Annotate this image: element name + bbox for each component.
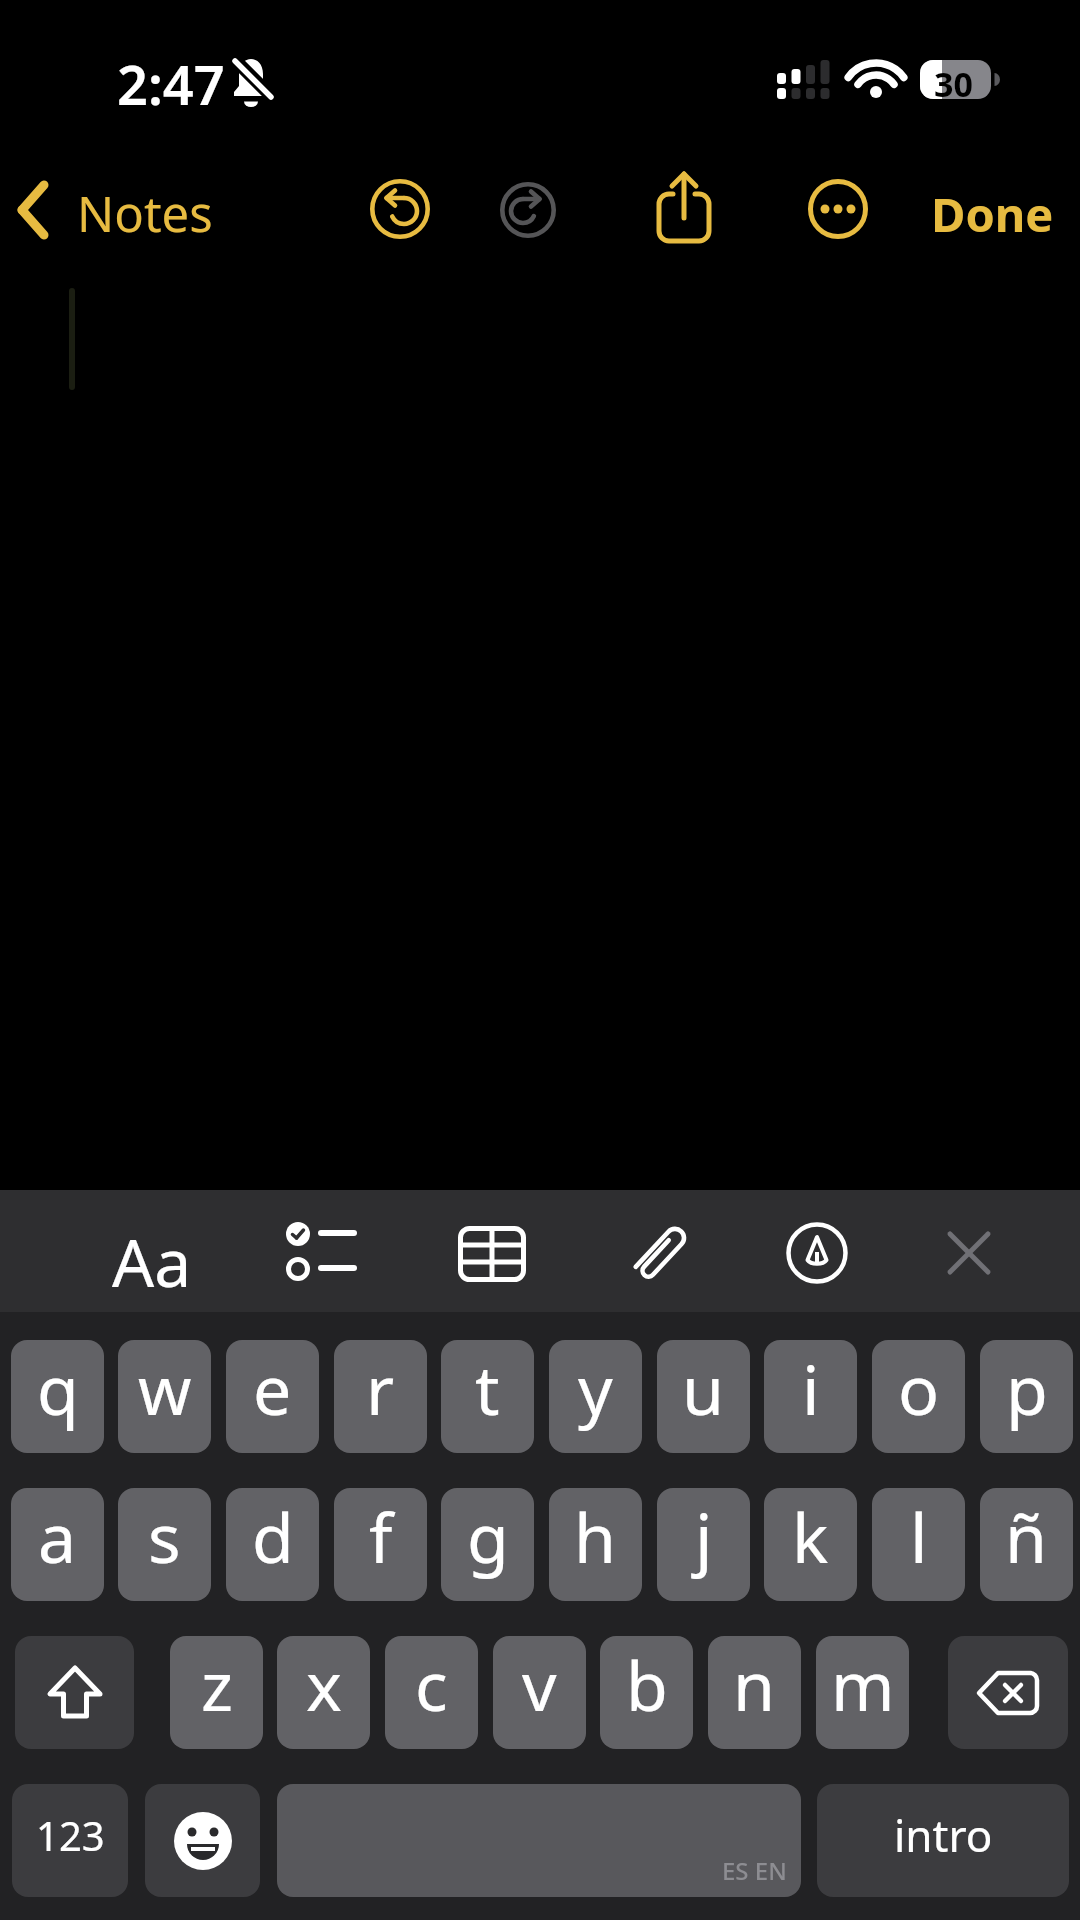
button[interactable] <box>652 168 716 248</box>
staticText: t <box>475 1342 500 1435</box>
staticText: h <box>574 1490 617 1583</box>
button[interactable]: p <box>980 1340 1073 1453</box>
button[interactable]: u <box>657 1340 750 1453</box>
button[interactable]: i <box>764 1340 857 1453</box>
staticText: y <box>578 1342 613 1435</box>
staticText: a <box>38 1490 77 1583</box>
staticText: 2:47 <box>117 47 225 121</box>
staticText: l <box>910 1490 928 1583</box>
staticText: k <box>792 1490 829 1583</box>
staticText: z <box>201 1638 233 1731</box>
button[interactable]: Aa <box>112 1216 192 1306</box>
button[interactable]: k <box>764 1488 857 1601</box>
button[interactable]: 123 <box>12 1784 128 1897</box>
button[interactable]: g <box>441 1488 534 1601</box>
button[interactable]: d <box>226 1488 319 1601</box>
button[interactable]: ñ <box>980 1488 1073 1601</box>
button[interactable]: n <box>708 1636 801 1749</box>
button[interactable] <box>284 1222 360 1284</box>
staticText: n <box>733 1638 776 1731</box>
button[interactable]: s <box>118 1488 211 1601</box>
button[interactable] <box>15 1636 134 1749</box>
staticText: s <box>148 1490 181 1583</box>
button[interactable]: intro <box>817 1784 1069 1897</box>
staticText: w <box>138 1342 192 1435</box>
button[interactable]: r <box>334 1340 427 1453</box>
button[interactable] <box>370 179 430 239</box>
button[interactable]: x <box>277 1636 370 1749</box>
staticText: i <box>802 1342 820 1435</box>
button[interactable]: ES EN <box>277 1784 801 1897</box>
staticText: f <box>369 1490 393 1583</box>
staticText: v <box>522 1638 557 1731</box>
button[interactable]: t <box>441 1340 534 1453</box>
button[interactable]: q <box>11 1340 104 1453</box>
button[interactable] <box>786 1222 848 1284</box>
button[interactable]: w <box>118 1340 211 1453</box>
button[interactable] <box>500 182 556 238</box>
button[interactable]: h <box>549 1488 642 1601</box>
staticText: u <box>682 1342 725 1435</box>
button[interactable]: o <box>872 1340 965 1453</box>
staticText: ES EN <box>722 1854 787 1887</box>
button[interactable] <box>808 179 868 239</box>
staticText: 30 <box>934 61 973 107</box>
button[interactable]: b <box>600 1636 693 1749</box>
button[interactable]: z <box>170 1636 263 1749</box>
staticText: e <box>253 1342 292 1435</box>
button[interactable] <box>458 1226 526 1282</box>
button[interactable]: y <box>549 1340 642 1453</box>
button[interactable] <box>624 1218 696 1290</box>
button[interactable]: j <box>657 1488 750 1601</box>
button[interactable]: c <box>385 1636 478 1749</box>
button[interactable]: e <box>226 1340 319 1453</box>
button[interactable]: l <box>872 1488 965 1601</box>
button[interactable]: Done <box>931 182 1054 246</box>
staticText: intro <box>894 1805 993 1865</box>
button[interactable]: a <box>11 1488 104 1601</box>
staticText: x <box>306 1638 342 1731</box>
button[interactable]: m <box>816 1636 909 1749</box>
button[interactable] <box>938 1222 1000 1284</box>
staticText: g <box>467 1490 509 1583</box>
staticText: b <box>626 1638 668 1731</box>
button[interactable] <box>18 182 50 238</box>
staticText: ñ <box>1005 1490 1048 1583</box>
button[interactable]: f <box>334 1488 427 1601</box>
staticText: p <box>1006 1342 1048 1435</box>
button[interactable] <box>145 1784 260 1897</box>
staticText: r <box>366 1342 395 1435</box>
staticText: o <box>898 1342 940 1435</box>
staticText: m <box>831 1638 895 1731</box>
staticText: 123 <box>36 1808 105 1862</box>
staticText: d <box>252 1490 294 1583</box>
staticText: j <box>695 1490 713 1583</box>
staticText: q <box>37 1342 79 1435</box>
staticText: c <box>415 1638 448 1731</box>
button[interactable]: Notes <box>77 180 213 247</box>
button[interactable] <box>948 1636 1068 1749</box>
button[interactable]: v <box>493 1636 586 1749</box>
